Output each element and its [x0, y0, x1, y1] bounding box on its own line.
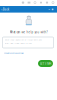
button[interactable]: Notifications	[45, 0, 49, 5]
button[interactable]: Messages	[27, 0, 31, 5]
staticText: Enter your question or issue here and	[4, 38, 41, 41]
staticText: Back	[3, 7, 10, 11]
staticText: Let's talk	[40, 62, 51, 65]
staticText: we'll get right back to you	[4, 42, 31, 45]
button[interactable]: Cart	[21, 0, 25, 5]
button[interactable]: More	[51, 0, 55, 5]
button[interactable]: Search	[33, 0, 37, 5]
button[interactable]: Account	[39, 0, 43, 5]
button[interactable]: Show me some examples	[4, 51, 26, 54]
staticText: What can we help you with?	[9, 30, 47, 34]
staticText: ‹	[1, 7, 2, 12]
button[interactable]: ‹	[0, 6, 11, 13]
staticText: Show me some examples	[4, 52, 24, 54]
button[interactable]: Let's talk	[38, 60, 53, 67]
